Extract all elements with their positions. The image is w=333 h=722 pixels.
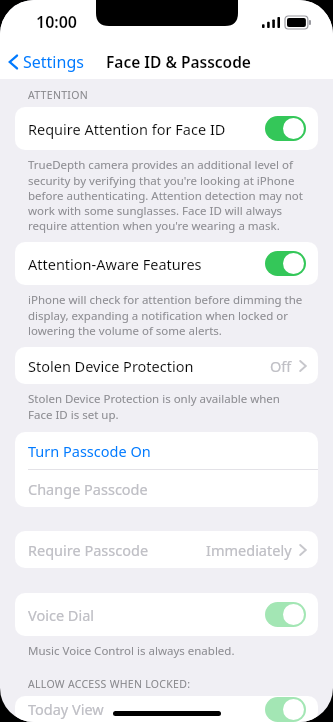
staticText: Immediately bbox=[206, 540, 292, 560]
staticText: Stolen Device Protection is only availab… bbox=[28, 391, 307, 422]
button[interactable]: Settings bbox=[0, 47, 90, 77]
button[interactable]: Toggle bbox=[265, 251, 306, 276]
staticText: Require Passcode bbox=[28, 540, 149, 560]
button[interactable]: Turn Passcode On bbox=[15, 432, 318, 469]
staticText: Stolen Device Protection bbox=[28, 356, 194, 376]
staticText: Today View bbox=[28, 699, 104, 719]
staticText: TrueDepth camera provides an additional … bbox=[28, 157, 307, 233]
staticText: Voice Dial bbox=[28, 605, 95, 625]
staticText: iPhone will check for attention before d… bbox=[28, 292, 307, 338]
staticText: Off bbox=[270, 356, 292, 376]
staticText: Music Voice Control is always enabled. bbox=[28, 643, 235, 659]
staticText: Change Passcode bbox=[28, 479, 148, 499]
staticText: Turn Passcode On bbox=[28, 441, 151, 461]
staticText: ALLOW ACCESS WHEN LOCKED: bbox=[28, 677, 191, 691]
button[interactable]: Toggle bbox=[265, 697, 306, 722]
button[interactable]: Stolen Device Protection bbox=[15, 347, 318, 384]
button[interactable]: Today View bbox=[15, 696, 318, 722]
button[interactable]: Require Passcode bbox=[15, 531, 318, 568]
button[interactable]: Toggle bbox=[265, 116, 306, 141]
button[interactable]: Require Attention for Face ID bbox=[15, 107, 318, 150]
staticText: Attention-Aware Features bbox=[28, 254, 202, 274]
button[interactable]: Change Passcode bbox=[15, 470, 318, 507]
button[interactable]: Toggle bbox=[265, 602, 306, 627]
staticText: Require Attention for Face ID bbox=[28, 119, 226, 139]
button[interactable]: Attention-Aware Features bbox=[15, 242, 318, 285]
staticText: ATTENTION bbox=[28, 88, 88, 102]
staticText: Face ID & Passcode bbox=[106, 51, 251, 72]
staticText: Settings bbox=[23, 51, 84, 73]
staticText: 10:00 bbox=[36, 11, 78, 33]
button[interactable]: Voice Dial bbox=[15, 593, 318, 636]
